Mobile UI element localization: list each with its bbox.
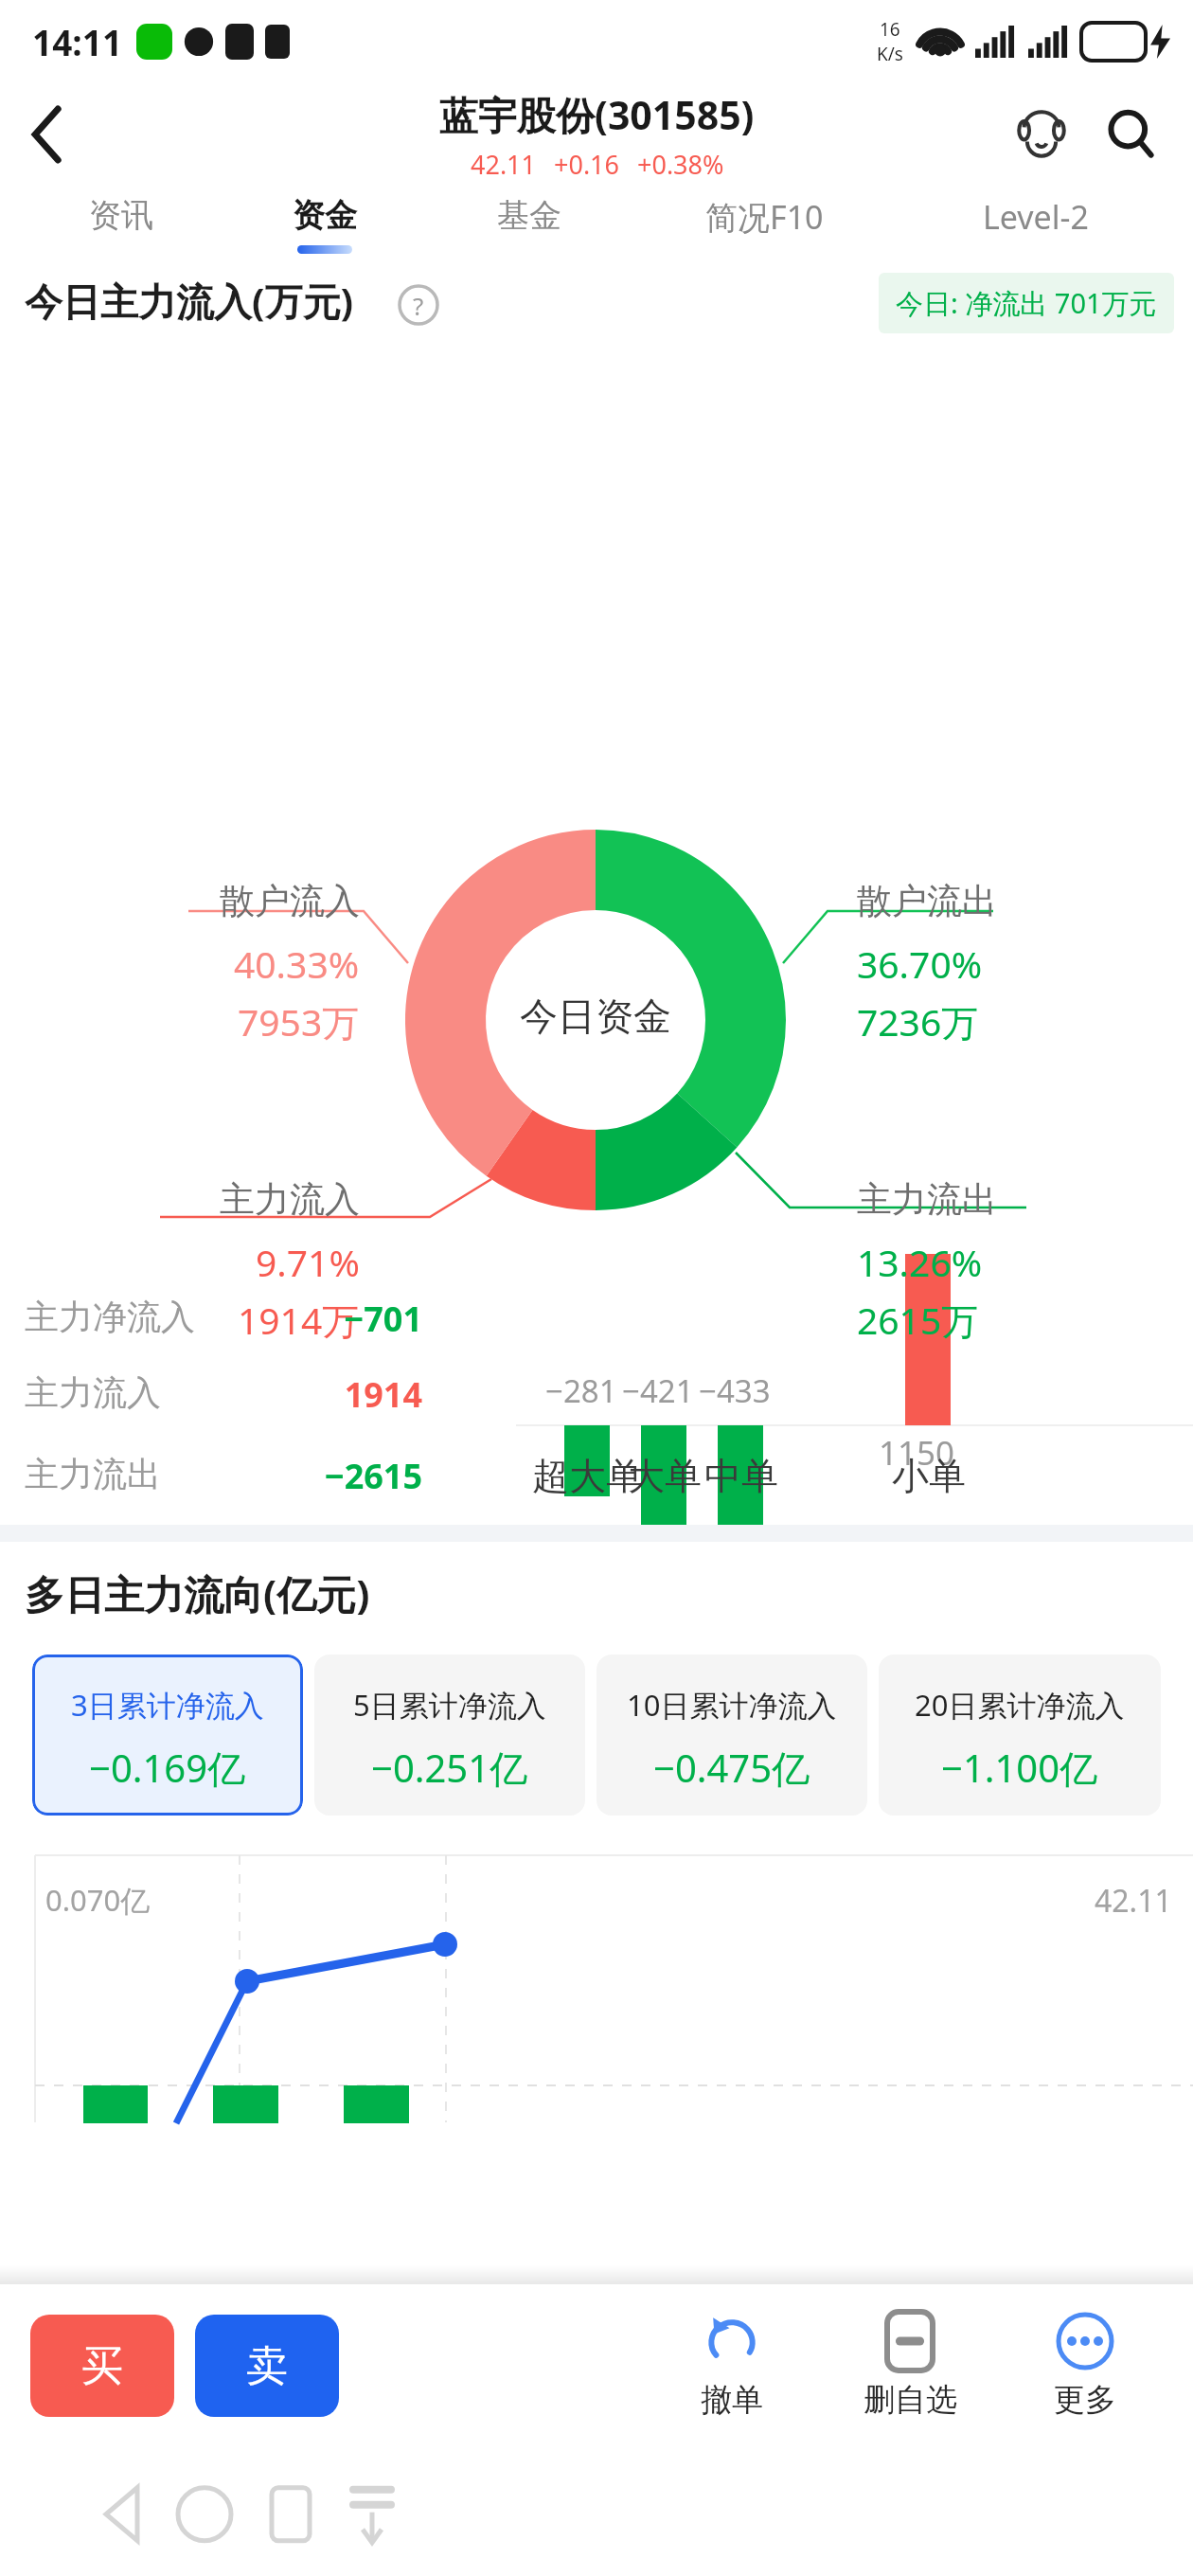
- staticText: 蓝宇股份(301585): [439, 88, 755, 141]
- staticText: −2615: [242, 1453, 422, 1499]
- staticText: 小单: [892, 1453, 966, 1499]
- button[interactable]: 简况F10: [632, 186, 898, 273]
- staticText: 撤单: [701, 2380, 763, 2420]
- button[interactable]: Help: [398, 284, 439, 326]
- staticText: −281: [545, 1369, 617, 1412]
- staticText: 13.26%: [857, 1237, 983, 1287]
- staticText: 1150: [879, 1430, 955, 1476]
- staticText: +0.38%: [637, 147, 724, 182]
- button[interactable]: 基金: [427, 186, 632, 273]
- button[interactable]: 今日: 净流出 701万元: [879, 273, 1174, 333]
- staticText: 今日主力流入(万元): [25, 275, 354, 327]
- staticText: 主力流出: [857, 1177, 997, 1222]
- button[interactable]: 删自选: [820, 2312, 1000, 2420]
- button[interactable]: 卖: [195, 2315, 339, 2417]
- staticText: 散户流入: [220, 879, 360, 923]
- button[interactable]: 撤单: [644, 2312, 820, 2420]
- staticText: 删自选: [864, 2380, 957, 2420]
- staticText: 资金: [293, 195, 357, 236]
- staticText: 40.33%: [234, 939, 360, 989]
- staticText: 1914万: [238, 1295, 360, 1345]
- staticText: 散户流出: [857, 879, 997, 923]
- button[interactable]: 3日累计净流入: [32, 1655, 303, 1816]
- staticText: 多日主力流向(亿元): [25, 1566, 370, 1620]
- staticText: Level-2: [983, 195, 1089, 239]
- button[interactable]: Customer service: [1004, 97, 1079, 172]
- staticText: K/s: [877, 42, 903, 66]
- button[interactable]: 20日累计净流入: [879, 1655, 1161, 1816]
- staticText: 9.71%: [256, 1237, 360, 1287]
- staticText: 16: [880, 17, 900, 42]
- staticText: 中单: [704, 1453, 778, 1499]
- staticText: +0.16: [554, 147, 620, 182]
- button[interactable]: 10日累计净流入: [596, 1655, 867, 1816]
- button[interactable]: 资讯: [19, 186, 223, 273]
- staticText: 36.70%: [857, 939, 983, 989]
- staticText: −421: [622, 1369, 694, 1412]
- staticText: 3日累计净流入: [71, 1685, 264, 1725]
- staticText: 7236万: [857, 996, 979, 1046]
- staticText: 主力净流入: [25, 1296, 242, 1338]
- staticText: 0.070亿: [45, 1880, 151, 1920]
- button[interactable]: Level-2: [898, 186, 1174, 273]
- button[interactable]: 5日累计净流入: [314, 1655, 585, 1816]
- staticText: ?: [413, 289, 424, 322]
- staticText: 简况F10: [705, 195, 824, 239]
- staticText: 大单: [628, 1453, 702, 1499]
- staticText: 更多: [1054, 2380, 1116, 2420]
- staticText: 资讯: [89, 195, 153, 236]
- staticText: 今日: 净流出 701万元: [896, 284, 1157, 322]
- button[interactable]: 资金: [223, 186, 427, 273]
- staticText: 主力流入: [220, 1177, 360, 1222]
- staticText: 1914: [242, 1371, 422, 1418]
- staticText: 7953万: [238, 996, 360, 1046]
- button[interactable]: Back: [11, 98, 83, 170]
- staticText: 20日累计净流入: [915, 1685, 1125, 1725]
- staticText: 买: [81, 2340, 123, 2392]
- button[interactable]: 买: [30, 2315, 174, 2417]
- staticText: 主力流入: [25, 1371, 242, 1414]
- staticText: −0.251亿: [371, 1742, 528, 1794]
- staticText: 42.11: [471, 147, 537, 182]
- staticText: −701: [242, 1296, 422, 1342]
- staticText: 5日累计净流入: [353, 1685, 546, 1725]
- staticText: 10日累计净流入: [627, 1685, 837, 1725]
- staticText: 超大单: [532, 1453, 643, 1499]
- staticText: 主力流出: [25, 1453, 242, 1495]
- staticText: −0.169亿: [89, 1742, 246, 1794]
- staticText: 卖: [246, 2340, 288, 2392]
- staticText: −1.100亿: [941, 1742, 1098, 1794]
- staticText: 42.11: [1095, 1880, 1172, 1922]
- staticText: 14:11: [32, 18, 123, 65]
- button[interactable]: Search: [1093, 97, 1168, 172]
- staticText: 基金: [497, 195, 561, 236]
- staticText: 2615万: [857, 1295, 979, 1345]
- staticText: −433: [699, 1369, 771, 1412]
- staticText: 今日资金: [520, 993, 671, 1040]
- button[interactable]: 更多: [1000, 2312, 1170, 2420]
- staticText: −0.475亿: [653, 1742, 810, 1794]
